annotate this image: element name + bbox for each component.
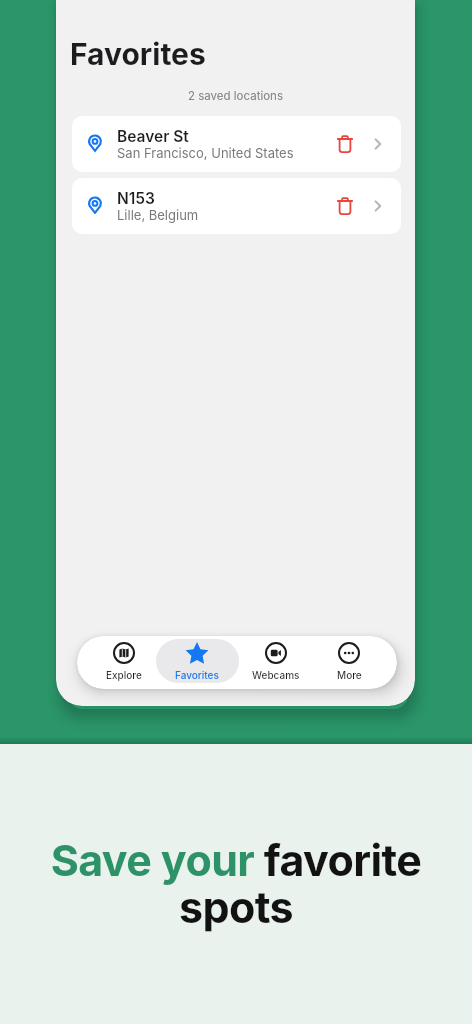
staticText: Favorites <box>175 669 219 681</box>
staticText: Save your favorite spots <box>0 834 472 934</box>
staticText: Favorites <box>70 36 206 72</box>
button[interactable] <box>334 195 356 217</box>
staticText: Lille, Belgium <box>117 207 199 223</box>
staticText: Explore <box>106 669 142 681</box>
staticText: San Francisco, United States <box>117 145 294 161</box>
staticText: Beaver St <box>117 127 189 146</box>
staticText: Webcams <box>252 669 300 681</box>
staticText: More <box>337 669 362 681</box>
button[interactable]: Explore <box>86 636 162 689</box>
button[interactable]: Webcams <box>238 636 314 689</box>
button[interactable] <box>334 133 356 155</box>
staticText: 2 saved locations <box>188 89 283 103</box>
button[interactable]: More <box>311 636 387 689</box>
button[interactable]: Beaver St <box>72 116 401 172</box>
staticText: N153 <box>117 189 155 208</box>
button[interactable]: N153 <box>72 178 401 234</box>
button[interactable]: Favorites <box>159 636 235 689</box>
